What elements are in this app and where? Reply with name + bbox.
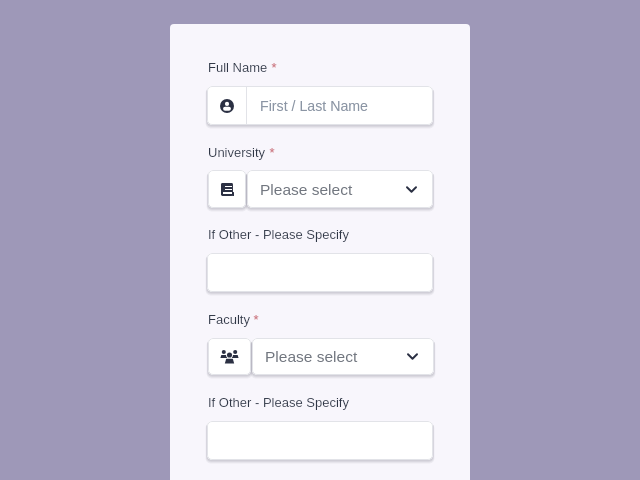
staticText: If Other - Please Specify: [208, 395, 349, 410]
staticText: *: [268, 60, 277, 75]
button[interactable]: University: [208, 170, 246, 208]
staticText: Please select: [265, 348, 407, 365]
staticText: *: [250, 312, 259, 327]
staticText: Faculty: [208, 312, 250, 327]
staticText: University: [208, 145, 266, 160]
staticText: First / Last Name: [260, 98, 369, 114]
staticText: Full Name: [208, 60, 268, 75]
button[interactable]: If other university: [207, 253, 433, 292]
button[interactable]: Faculty: [208, 338, 251, 375]
staticText: Please select: [260, 181, 406, 198]
other: Person: [207, 86, 246, 125]
staticText: *: [266, 145, 275, 160]
button[interactable]: Please select: [247, 170, 433, 208]
button[interactable]: Person: [207, 86, 433, 125]
button[interactable]: Please select: [252, 338, 434, 375]
staticText: If Other - Please Specify: [208, 227, 349, 242]
button[interactable]: If other faculty: [207, 421, 433, 460]
